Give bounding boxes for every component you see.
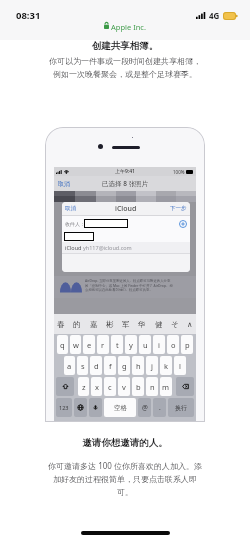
button[interactable]: 的 bbox=[73, 320, 81, 329]
button[interactable]: n bbox=[146, 377, 158, 396]
button[interactable]: c bbox=[104, 377, 116, 396]
staticText: t bbox=[116, 340, 119, 350]
button[interactable]: Dictation bbox=[89, 398, 102, 417]
button[interactable]: 健 bbox=[155, 320, 163, 329]
staticText: @ bbox=[142, 403, 148, 412]
button[interactable]: r bbox=[97, 335, 109, 354]
staticText: p bbox=[185, 340, 190, 350]
button[interactable]: d bbox=[90, 356, 102, 375]
button[interactable]: 下一步 bbox=[170, 205, 187, 212]
staticText: 么您将可以在此处看到他们。轻点即可共享。 bbox=[85, 288, 153, 292]
staticText: yh117@icloud.com bbox=[83, 244, 132, 251]
staticText: c bbox=[108, 382, 112, 392]
button[interactable]: y bbox=[125, 335, 137, 354]
button[interactable]: o bbox=[167, 335, 179, 354]
button[interactable]: a bbox=[64, 356, 75, 375]
button[interactable]: 取消 bbox=[58, 180, 70, 188]
staticText: 你可以为一件事或一段时间创建共享相簿， 例如一次晚餐聚会，或是整个足球赛季。 bbox=[14, 56, 236, 79]
button[interactable]: g bbox=[118, 356, 130, 375]
staticText: n bbox=[150, 382, 155, 392]
staticText: iCloud bbox=[65, 244, 83, 251]
button[interactable]: i bbox=[153, 335, 165, 354]
button[interactable]: k bbox=[160, 356, 172, 375]
button[interactable]: 军 bbox=[122, 320, 130, 329]
staticText: o bbox=[171, 340, 176, 350]
button[interactable]: w bbox=[70, 335, 81, 354]
staticText: s bbox=[81, 361, 85, 371]
button[interactable]: 换行 bbox=[168, 398, 194, 417]
staticText: r bbox=[101, 340, 105, 350]
button[interactable]: t bbox=[111, 335, 123, 354]
button[interactable]: Backspace bbox=[176, 377, 194, 396]
staticText: z bbox=[82, 382, 86, 392]
button[interactable]: p bbox=[181, 335, 193, 354]
staticText: a bbox=[67, 361, 72, 371]
button[interactable]: 春 bbox=[57, 320, 65, 329]
button[interactable]: 空格 bbox=[104, 398, 136, 417]
button[interactable]: f bbox=[104, 356, 116, 375]
staticText: iCloud bbox=[115, 204, 137, 214]
staticText: 邀请你想邀请的人。 bbox=[0, 437, 250, 449]
button[interactable]: 彬 bbox=[106, 320, 114, 329]
staticText: v bbox=[122, 382, 126, 392]
button[interactable]: 嘉 bbox=[90, 320, 98, 329]
staticText: 4G bbox=[209, 10, 220, 21]
button[interactable]: Shift bbox=[56, 377, 74, 396]
staticText: j bbox=[151, 361, 153, 371]
staticText: m bbox=[162, 382, 170, 392]
button[interactable]: e bbox=[83, 335, 95, 354]
button[interactable]: z bbox=[78, 377, 89, 396]
staticText: e bbox=[87, 340, 92, 350]
button[interactable]: v bbox=[118, 377, 130, 396]
button[interactable]: Change keyboard bbox=[74, 398, 87, 417]
staticText: b bbox=[136, 382, 141, 392]
staticText: 08:31 bbox=[16, 9, 41, 22]
button[interactable]: x bbox=[91, 377, 102, 396]
staticText: x bbox=[95, 382, 99, 392]
staticText: h bbox=[136, 361, 141, 371]
staticText: 收件人： bbox=[65, 221, 85, 227]
staticText: AirDrop. 立即分享至附近的人。轻点即可与附近的人分享 bbox=[85, 278, 171, 283]
staticText: w bbox=[73, 340, 79, 350]
staticText: 已选择 8 张照片 bbox=[102, 179, 149, 188]
staticText: 123 bbox=[59, 404, 69, 411]
staticText: k bbox=[164, 361, 169, 371]
button[interactable]: l bbox=[174, 356, 186, 375]
button[interactable]: @ bbox=[138, 398, 151, 417]
button[interactable]: Add contact bbox=[179, 220, 187, 228]
staticText: 上午9:41 bbox=[115, 168, 135, 175]
staticText: 100% bbox=[173, 169, 185, 175]
staticText: u bbox=[143, 340, 148, 350]
staticText: Apple Inc. bbox=[111, 22, 146, 32]
button[interactable]: 123 bbox=[56, 398, 72, 417]
button[interactable]: ∧ bbox=[187, 320, 193, 329]
staticText: 的「控制中心」或 Mac 上的 Finder 中打开了 AirDrop。您 bbox=[85, 283, 173, 288]
staticText: i bbox=[158, 340, 160, 350]
button[interactable]: 华 bbox=[138, 320, 146, 329]
staticText: . bbox=[159, 403, 161, 412]
button[interactable]: b bbox=[132, 377, 144, 396]
button[interactable]: . bbox=[153, 398, 166, 417]
staticText: y bbox=[129, 340, 133, 350]
button[interactable]: h bbox=[132, 356, 144, 375]
button[interactable]: そ bbox=[171, 320, 179, 329]
staticText: 创建共享相簿。 bbox=[0, 40, 250, 52]
staticText: g bbox=[122, 361, 127, 371]
staticText: 你可邀请多达 100 位你所喜欢的人加入。添 加好友的过程很简单，只要点击联系人… bbox=[14, 460, 236, 497]
staticText: q bbox=[60, 340, 65, 350]
button[interactable]: q bbox=[57, 335, 68, 354]
staticText: f bbox=[109, 361, 112, 371]
staticText: 换行 bbox=[175, 404, 187, 412]
staticText: d bbox=[94, 361, 99, 371]
staticText: l bbox=[179, 361, 181, 371]
button[interactable]: m bbox=[160, 377, 172, 396]
button[interactable]: s bbox=[77, 356, 88, 375]
button[interactable]: 取消 bbox=[65, 205, 76, 212]
button[interactable]: j bbox=[146, 356, 158, 375]
staticText: 空格 bbox=[114, 404, 127, 412]
button[interactable]: u bbox=[139, 335, 151, 354]
